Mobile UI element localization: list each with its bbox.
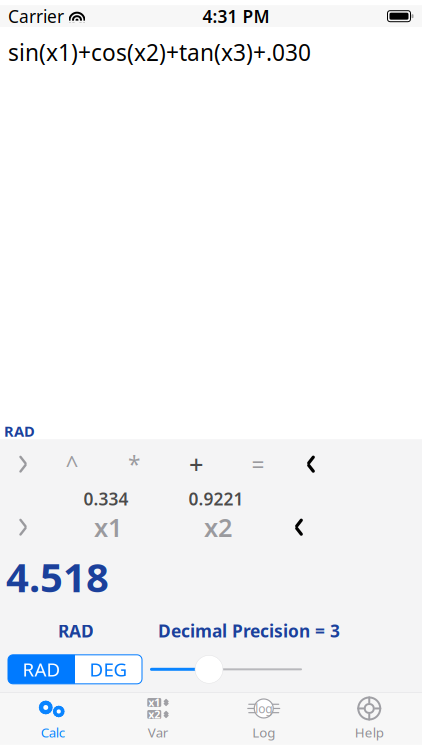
- staticText: RAD: [22, 657, 60, 682]
- staticText: RAD: [58, 619, 94, 642]
- button[interactable]: ^: [50, 449, 94, 479]
- button[interactable]: =: [236, 449, 280, 479]
- button[interactable]: x1: [78, 512, 138, 542]
- staticText: Calc: [41, 723, 65, 741]
- staticText: Help: [355, 723, 384, 741]
- staticText: sin(x1)+cos(x2)+tan(x3)+.030: [8, 37, 311, 67]
- staticText: x2: [148, 707, 160, 722]
- staticText: 0.9221: [188, 487, 243, 510]
- button[interactable]: Next variable: [278, 512, 320, 542]
- staticText: x1: [94, 510, 122, 544]
- button[interactable]: Previous variable: [2, 512, 44, 542]
- button[interactable]: Help: [316, 694, 422, 743]
- staticText: =: [251, 449, 264, 479]
- button[interactable]: DEG: [75, 655, 142, 684]
- button[interactable]: +: [174, 449, 218, 479]
- button[interactable]: x2: [188, 512, 248, 542]
- staticText: Decimal Precision = 3: [158, 619, 340, 642]
- staticText: *: [128, 449, 140, 479]
- staticText: log: [255, 700, 272, 716]
- staticText: +: [189, 447, 203, 481]
- staticText: RAD: [4, 421, 35, 441]
- staticText: 0.334: [83, 487, 128, 510]
- staticText: DEG: [89, 657, 127, 682]
- button[interactable]: log: [211, 694, 316, 743]
- button[interactable]: RAD: [8, 655, 75, 684]
- staticText: Log: [252, 723, 275, 741]
- staticText: 4.518: [6, 550, 109, 603]
- button[interactable]: Previous operator: [2, 449, 44, 479]
- button[interactable]: Next operator: [290, 449, 332, 479]
- staticText: 4:31 PM: [202, 5, 269, 28]
- button[interactable]: x1: [105, 694, 211, 743]
- staticText: x2: [204, 510, 232, 544]
- staticText: x1: [148, 695, 160, 710]
- staticText: ^: [65, 449, 78, 479]
- button[interactable]: Calc: [0, 694, 105, 743]
- staticText: Var: [148, 723, 169, 741]
- staticText: Carrier: [8, 5, 64, 28]
- button[interactable]: *: [112, 449, 156, 479]
